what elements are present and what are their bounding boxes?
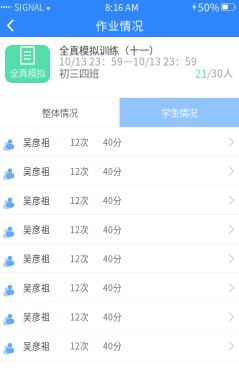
staticText: 吴彦祖 [23,340,50,352]
staticText: 学生情况 [161,106,197,119]
staticText: 12次 [70,311,89,323]
staticText: 12次 [70,252,89,265]
button[interactable]: 吴彦祖 [0,331,239,360]
staticText: 吴彦祖 [23,252,50,265]
staticText: 吴彦祖 [23,136,50,148]
staticText: 40分 [103,136,122,148]
staticText: 40分 [103,340,122,352]
staticText: 40分 [103,223,122,236]
staticText: SIGNAL [14,1,44,13]
staticText: 12次 [70,194,89,207]
button[interactable]: 吴彦祖 [0,302,239,331]
button[interactable]: 吴彦祖 [0,128,239,157]
staticText: 吴彦祖 [23,194,50,207]
staticText: 吴彦祖 [23,310,50,323]
button[interactable]: 吴彦祖 [0,215,239,244]
staticText: 8:16 AM [105,0,138,13]
button[interactable]: 吴彦祖 [0,186,239,215]
staticText: 12次 [70,136,89,148]
staticText: 吴彦祖 [23,223,50,236]
button[interactable]: 吴彦祖 [0,273,239,302]
staticText: 40分 [103,252,122,265]
staticText: 全真模拟 [9,66,45,79]
button[interactable]: 吴彦祖 [0,157,239,186]
staticText: 吴彦祖 [23,165,50,177]
button[interactable]: 返回 [0,15,24,36]
button[interactable]: 学生情况 [119,98,239,127]
staticText: 初三四班 [59,65,99,81]
staticText: 40分 [103,194,122,207]
staticText: 12次 [70,340,89,352]
staticText: 40分 [103,311,122,323]
button[interactable]: 整体情况 [0,98,119,127]
staticText: 12次 [70,223,89,236]
staticText: 21 [195,65,207,81]
staticText: 整体情况 [42,106,78,119]
staticText: 12次 [70,281,89,294]
staticText: 10/13 23：59－10/13 23：59 [59,54,197,68]
staticText: 40分 [103,165,122,177]
staticText: 作业情况 [95,17,143,34]
staticText: /30人 [207,66,233,80]
staticText: 12次 [70,165,89,177]
button[interactable]: 吴彦祖 [0,244,239,273]
staticText: 50% [198,0,219,14]
staticText: 40分 [103,281,122,294]
staticText: 全真模拟训练（十一） [59,43,159,57]
staticText: 吴彦祖 [23,281,50,294]
